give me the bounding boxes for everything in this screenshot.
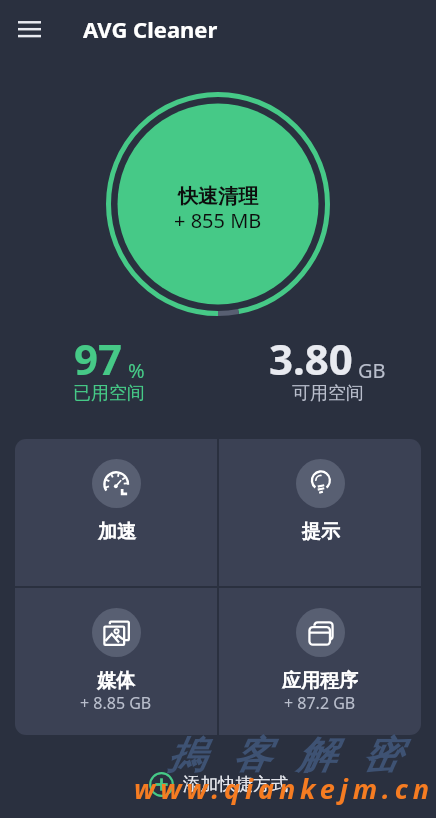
staticText: www.qiankejm.cn: [134, 770, 434, 807]
staticText: + 87.2 GB: [284, 692, 356, 714]
staticText: AVG Cleaner: [83, 14, 218, 44]
staticText: 添加快捷方式: [183, 773, 288, 795]
staticText: 3.80: [269, 330, 353, 387]
button[interactable]: 添加快捷方式: [0, 764, 436, 804]
button[interactable]: 加速: [15, 439, 217, 586]
staticText: 可用空间: [292, 382, 364, 405]
button[interactable]: Menu: [8, 7, 50, 49]
staticText: 加速: [98, 520, 136, 544]
button[interactable]: 3.80: [218, 330, 436, 410]
button[interactable]: 快速清理: [106, 92, 330, 316]
staticText: 97: [74, 330, 123, 387]
staticText: GB: [358, 357, 386, 384]
staticText: %: [128, 357, 145, 384]
staticText: + 855 MB: [174, 207, 262, 234]
button[interactable]: 提示: [219, 439, 421, 586]
button[interactable]: 97: [0, 330, 218, 410]
staticText: 已用空间: [73, 382, 145, 405]
staticText: 媒体: [97, 669, 135, 693]
button[interactable]: 应用程序: [219, 588, 421, 735]
staticText: + 8.85 GB: [80, 692, 152, 714]
staticText: 摀 客 解 密: [167, 727, 409, 779]
staticText: 快速清理: [178, 184, 258, 209]
staticText: 应用程序: [282, 669, 358, 693]
button[interactable]: 媒体: [15, 588, 217, 735]
staticText: 提示: [302, 520, 340, 544]
